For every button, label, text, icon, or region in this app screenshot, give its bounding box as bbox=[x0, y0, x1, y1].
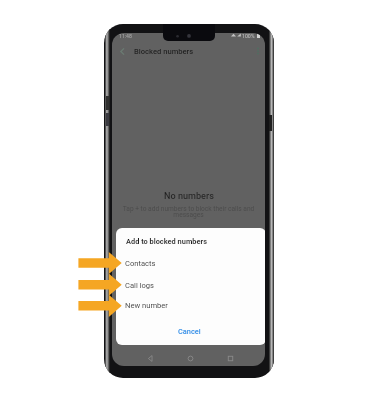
button[interactable]: New number bbox=[116, 298, 265, 313]
staticText: New number bbox=[125, 301, 168, 310]
staticText: Contacts bbox=[125, 259, 156, 268]
button[interactable]: Call logs bbox=[116, 278, 265, 293]
button[interactable]: Navigate up bbox=[114, 43, 130, 59]
button[interactable]: Home bbox=[178, 351, 202, 365]
button[interactable]: Recents bbox=[218, 351, 242, 365]
staticText: Tap + to add numbers to block their call… bbox=[120, 205, 257, 219]
staticText: Cancel bbox=[178, 327, 201, 336]
staticText: Blocked numbers bbox=[134, 47, 194, 56]
staticText: No numbers bbox=[164, 191, 214, 202]
button[interactable]: Contacts bbox=[116, 256, 265, 271]
staticText: Add to blocked numbers bbox=[126, 237, 207, 246]
staticText: 11:48 bbox=[119, 33, 132, 39]
staticText: Call logs bbox=[125, 281, 155, 290]
button[interactable]: Back bbox=[138, 351, 162, 365]
staticText: 100% bbox=[242, 33, 255, 38]
button[interactable]: Cancel bbox=[116, 323, 264, 339]
